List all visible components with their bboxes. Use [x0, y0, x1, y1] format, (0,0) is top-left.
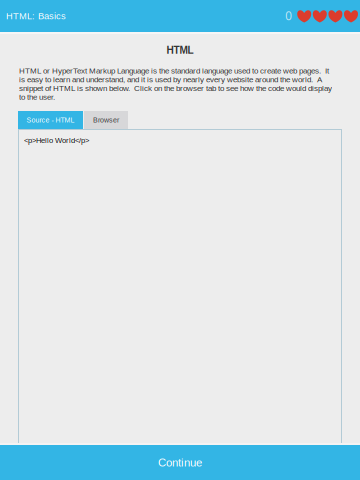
- staticText: HTML: Basics: [6, 11, 66, 21]
- staticText: 0: [285, 9, 292, 23]
- button[interactable]: Browser: [84, 111, 128, 129]
- button[interactable]: Continue: [0, 445, 360, 480]
- staticText: <p>Hello World</p>: [24, 136, 89, 144]
- staticText: HTML or HyperText Markup Language is the…: [19, 66, 332, 101]
- staticText: HTML: [166, 44, 193, 56]
- staticText: Source - HTML: [26, 116, 74, 124]
- staticText: Browser: [93, 116, 119, 124]
- staticText: Continue: [158, 456, 202, 469]
- button[interactable]: Source - HTML: [18, 111, 83, 129]
